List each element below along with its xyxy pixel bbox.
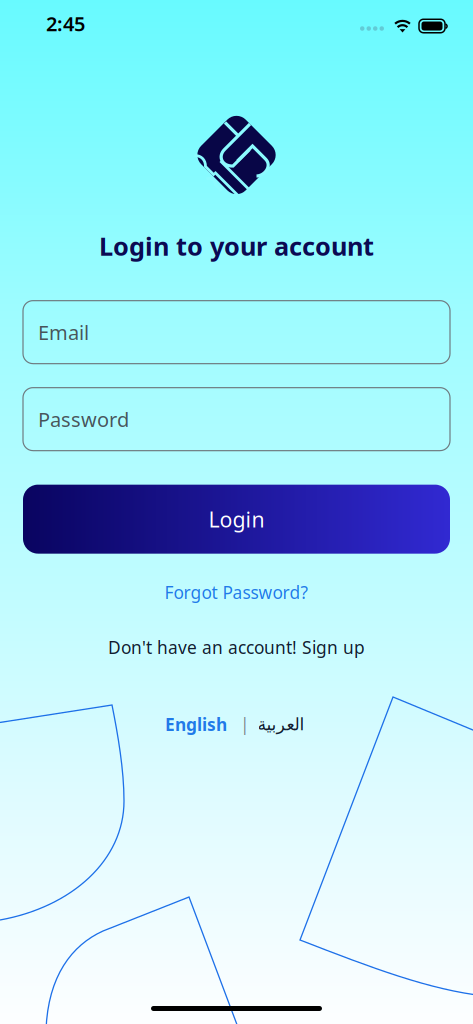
button[interactable]: Login <box>23 485 450 554</box>
button[interactable]: English <box>165 713 227 736</box>
staticText: 2:45 <box>46 10 85 37</box>
button[interactable]: Email <box>23 301 450 364</box>
staticText: Forgot Password? <box>164 581 308 604</box>
button[interactable]: Password <box>23 388 450 451</box>
button[interactable]: Don't have an account! Sign up <box>108 636 365 659</box>
staticText: | <box>240 713 250 736</box>
button[interactable]: العربية <box>257 714 304 734</box>
staticText: العربية <box>257 714 304 734</box>
staticText: Login <box>208 505 264 533</box>
staticText: Email <box>38 319 89 345</box>
staticText: English <box>165 713 227 736</box>
staticText: Login to your account <box>99 229 374 263</box>
button[interactable]: Forgot Password? <box>164 581 308 604</box>
staticText: Password <box>38 406 129 432</box>
staticText: Don't have an account! Sign up <box>108 636 365 659</box>
